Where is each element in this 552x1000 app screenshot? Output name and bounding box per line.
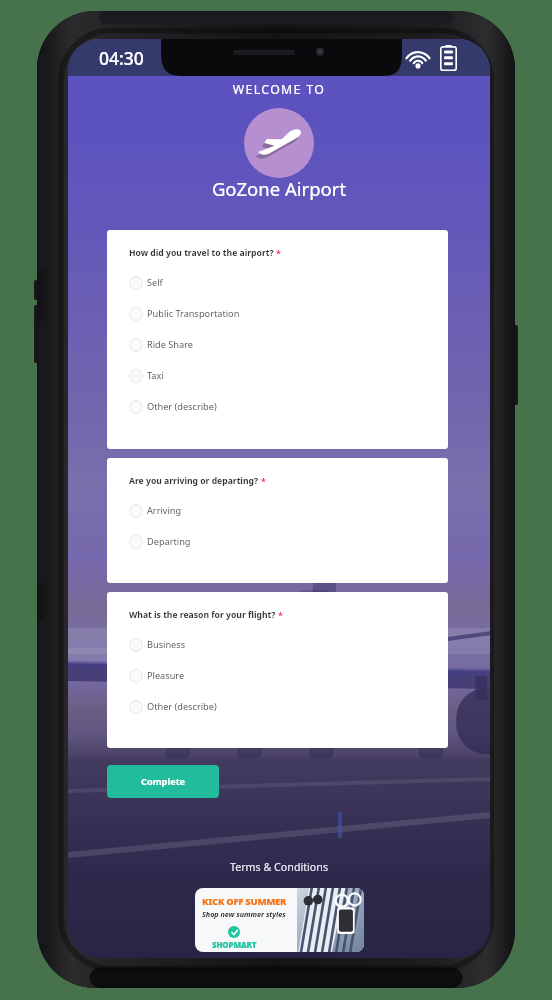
staticText: 04:30	[99, 46, 144, 70]
staticText: *	[261, 475, 266, 487]
button[interactable]: Business	[107, 629, 448, 660]
staticText: Other (describe)	[147, 700, 217, 713]
button[interactable]: Complete	[107, 765, 219, 798]
staticText: Are you arriving or departing?	[129, 475, 259, 487]
button[interactable]: Arriving	[107, 495, 448, 526]
button[interactable]: Other (describe)	[107, 391, 448, 422]
staticText: *	[278, 609, 283, 621]
staticText: How did you travel to the airport?	[129, 247, 274, 259]
button[interactable]: Terms & Conditions	[68, 860, 490, 875]
button[interactable]: Public Transportation	[107, 298, 448, 329]
other: Battery	[440, 45, 457, 71]
staticText: Self	[147, 276, 163, 289]
staticText: Complete	[141, 775, 186, 788]
button[interactable]: Self	[107, 267, 448, 298]
button[interactable]: Pleasure	[107, 660, 448, 691]
staticText: What is the reason for your flight?	[129, 609, 276, 621]
staticText: SHOPMART	[212, 939, 257, 950]
staticText: Departing	[147, 535, 191, 548]
other: Wi-Fi	[403, 47, 433, 69]
staticText: KICK OFF SUMMER	[202, 895, 287, 908]
staticText: Business	[147, 638, 186, 651]
button[interactable]: Other (describe)	[107, 691, 448, 722]
staticText: Shop new summer styles	[202, 909, 286, 919]
staticText: Arriving	[147, 504, 182, 517]
button[interactable]: Departing	[107, 526, 448, 557]
staticText: Taxi	[147, 369, 164, 382]
staticText: Ride Share	[147, 338, 193, 351]
staticText: WELCOME TO	[68, 81, 490, 98]
staticText: Public Transportation	[147, 307, 240, 320]
staticText: Pleasure	[147, 669, 185, 682]
staticText: GoZone Airport	[68, 176, 490, 201]
staticText: Other (describe)	[147, 400, 217, 413]
button[interactable]: Taxi	[107, 360, 448, 391]
staticText: *	[276, 247, 281, 259]
button[interactable]: Ride Share	[107, 329, 448, 360]
button[interactable]: Kick Off Summer advertisement	[195, 888, 364, 952]
